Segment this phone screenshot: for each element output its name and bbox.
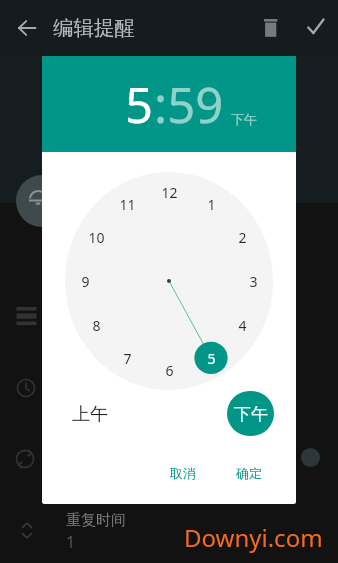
staticText: Downyi.com: [184, 521, 323, 554]
staticText: 编辑提醒: [53, 15, 135, 41]
staticText: 8: [92, 316, 101, 335]
staticText: 7: [123, 349, 132, 368]
staticText: 重复时间: [66, 511, 126, 530]
staticText: 下午: [231, 111, 257, 127]
staticText: 6: [165, 361, 174, 380]
staticText: 确定: [236, 465, 262, 481]
staticText: 下午: [234, 404, 268, 425]
staticText: 取消: [170, 465, 196, 481]
staticText: 9: [81, 272, 90, 291]
button[interactable]: 上午: [64, 395, 116, 434]
staticText: 4: [238, 316, 247, 335]
button[interactable]: 确定: [228, 457, 270, 489]
staticText: :59: [154, 71, 224, 138]
staticText: 1: [66, 531, 76, 553]
button[interactable]: 下午: [227, 391, 274, 436]
staticText: 5: [125, 71, 154, 138]
button[interactable]: 取消: [162, 457, 204, 489]
staticText: 上午: [72, 403, 108, 426]
staticText: 2: [238, 228, 247, 247]
staticText: 12: [161, 183, 178, 202]
staticText: 3: [249, 272, 258, 291]
staticText: 5: [207, 349, 216, 368]
button[interactable]: Back: [9, 8, 47, 48]
staticText: 10: [88, 228, 105, 247]
staticText: 11: [119, 195, 136, 214]
staticText: 1: [207, 195, 216, 214]
button[interactable]: Done: [297, 8, 333, 48]
button[interactable]: Delete: [252, 8, 288, 48]
